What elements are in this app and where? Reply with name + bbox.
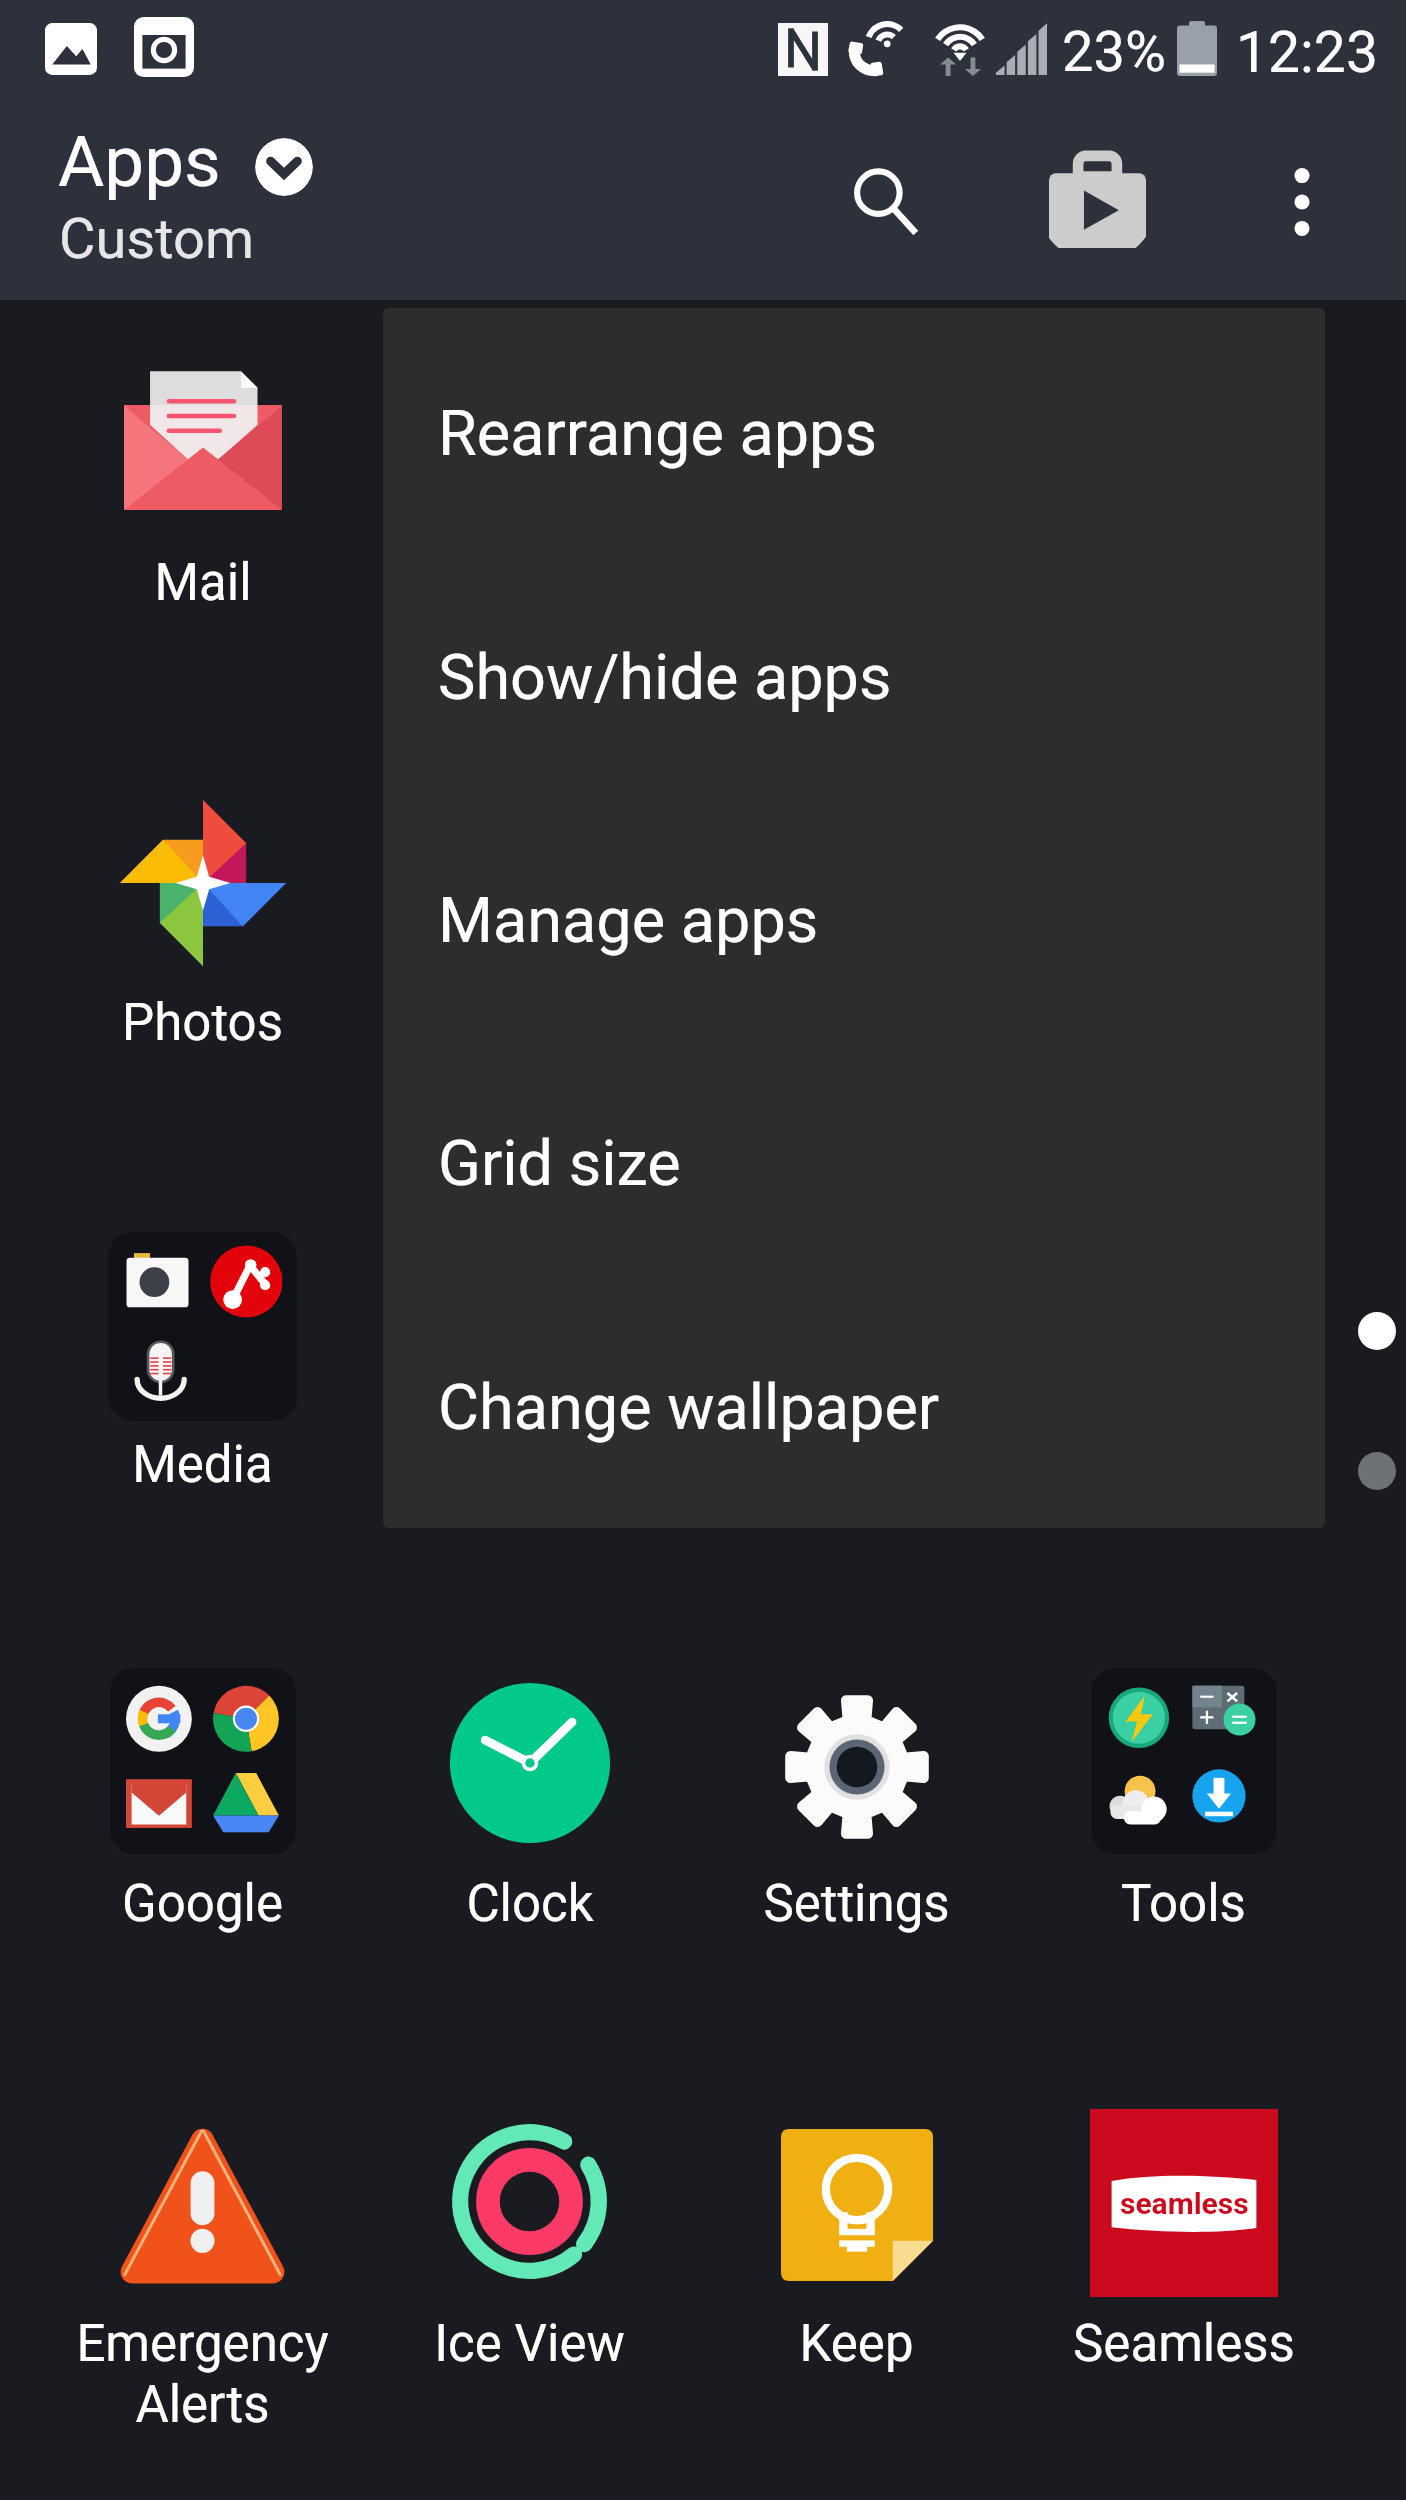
staticText: Media xyxy=(132,1435,273,1495)
button[interactable]: Grid size xyxy=(383,1042,1325,1286)
button[interactable]: More options xyxy=(1242,142,1362,262)
button[interactable]: Media xyxy=(39,1206,366,1581)
button[interactable]: Manage apps xyxy=(383,799,1325,1043)
staticText: Manage apps xyxy=(438,884,819,958)
staticText: Show/hide apps xyxy=(438,641,892,715)
button[interactable]: Google xyxy=(39,1642,366,2020)
staticText: Change wallpaper xyxy=(438,1371,940,1445)
button[interactable]: seamless xyxy=(1020,2083,1347,2460)
button[interactable]: Play Store xyxy=(1037,142,1157,262)
button[interactable]: Mail xyxy=(39,340,366,699)
staticText: Seamless xyxy=(1073,2314,1295,2374)
button[interactable]: Change wallpaper xyxy=(383,1286,1325,1528)
staticText: Google xyxy=(122,1874,283,1934)
button[interactable]: Photos xyxy=(39,774,366,1139)
button[interactable]: Keep xyxy=(693,2103,1020,2460)
staticText: 23% xyxy=(1062,19,1166,85)
button[interactable]: Search xyxy=(827,142,947,262)
button[interactable]: Tools xyxy=(1020,1642,1347,2020)
staticText: Apps xyxy=(58,120,221,203)
button[interactable]: Clock xyxy=(366,1646,693,2020)
staticText: Keep xyxy=(799,2314,914,2374)
button[interactable]: Show/hide apps xyxy=(383,556,1325,800)
staticText: 12:23 xyxy=(1236,19,1378,86)
button[interactable]: Ice View xyxy=(366,2094,693,2460)
button[interactable]: Settings xyxy=(693,1646,1020,2020)
staticText: seamless xyxy=(1120,2186,1249,2221)
staticText: Clock xyxy=(466,1874,594,1934)
staticText: Mail xyxy=(154,553,252,613)
button[interactable]: Emergency Alerts xyxy=(39,2084,366,2460)
staticText: Tools xyxy=(1121,1874,1246,1934)
button[interactable]: Rearrange apps xyxy=(383,312,1325,556)
staticText: Ice View xyxy=(434,2314,625,2374)
staticText: Photos xyxy=(122,993,283,1053)
staticText: Emergency Alerts xyxy=(76,2314,329,2434)
staticText: Grid size xyxy=(438,1127,681,1201)
staticText: Rearrange apps xyxy=(438,397,877,471)
button[interactable]: Switch apps view xyxy=(255,138,313,196)
staticText: Custom xyxy=(59,206,255,272)
staticText: Settings xyxy=(763,1874,950,1934)
